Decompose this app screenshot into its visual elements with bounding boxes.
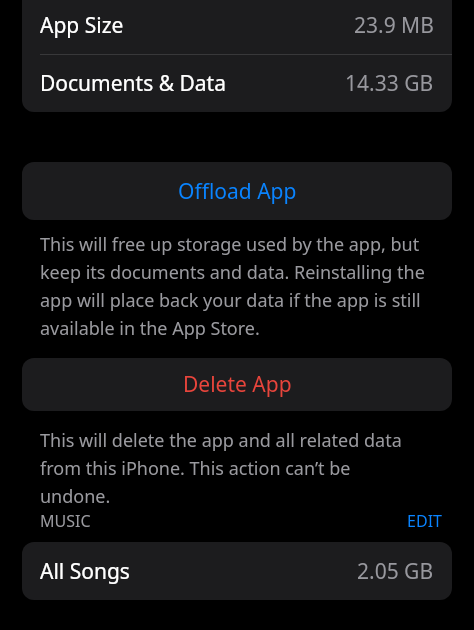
button[interactable]: App Size [22, 0, 452, 54]
staticText: 14.33 GB [345, 69, 434, 98]
staticText: undone. [40, 484, 111, 509]
staticText: available in the App Store. [40, 316, 260, 341]
button[interactable]: Delete App [22, 358, 452, 411]
staticText: This will free up storage used by the ap… [40, 232, 420, 257]
staticText: Delete App [183, 370, 292, 399]
staticText: This will delete the app and all related… [40, 428, 402, 453]
staticText: from this iPhone. This action can’t be [40, 456, 351, 481]
staticText: MUSIC [40, 510, 91, 532]
staticText: Offload App [178, 177, 297, 206]
button[interactable]: EDIT [407, 510, 442, 532]
staticText: Documents & Data [40, 69, 226, 98]
button[interactable]: All Songs [22, 542, 452, 600]
staticText: 2.05 GB [357, 557, 434, 586]
staticText: All Songs [40, 557, 130, 586]
button[interactable]: Documents & Data [22, 55, 452, 112]
staticText: 23.9 MB [354, 11, 434, 40]
staticText: keep its documents and data. Reinstallin… [40, 260, 425, 285]
staticText: App Size [40, 11, 124, 40]
staticText: EDIT [407, 510, 442, 532]
staticText: app will place back your data if the app… [40, 288, 421, 313]
button[interactable]: Offload App [22, 162, 452, 220]
